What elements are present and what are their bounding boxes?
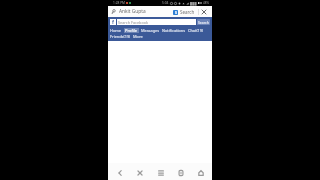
button[interactable]: Search Facebook (118, 19, 196, 25)
staticText: Profile (125, 28, 138, 33)
button[interactable]: Site info (111, 9, 116, 14)
staticText: Search Facebook (118, 20, 149, 25)
button[interactable]: Search (197, 19, 210, 25)
button[interactable]: Facebook (110, 19, 116, 25)
staticText: Home (110, 28, 122, 33)
staticText: Search (198, 20, 209, 25)
staticText: Messages (141, 28, 160, 33)
staticText: Friends(19) (110, 34, 131, 39)
button[interactable]: Notifications (162, 28, 186, 33)
button[interactable]: Messages (141, 28, 160, 33)
staticText: 5:04 (162, 1, 169, 5)
button[interactable]: Close tab (201, 9, 207, 15)
button[interactable]: Close (131, 166, 148, 180)
staticText: Ankit Gupta (119, 8, 146, 15)
button[interactable]: Friends(19) (110, 34, 131, 39)
button[interactable]: Tabs (172, 166, 189, 180)
staticText: f (112, 19, 114, 25)
staticText: ▉▉▉ (190, 2, 197, 5)
button[interactable]: Back (111, 166, 128, 180)
button[interactable]: Home (110, 28, 122, 33)
button[interactable]: Menu (152, 166, 169, 180)
staticText: Chat(19) (188, 28, 204, 33)
staticText: Notifications (162, 28, 186, 33)
button[interactable]: More (133, 34, 143, 39)
button[interactable]: Home (192, 166, 209, 180)
staticText: Search (180, 9, 195, 15)
staticText: 1:28 PM (113, 1, 125, 5)
button[interactable]: S (173, 9, 195, 15)
staticText: S (175, 10, 177, 15)
staticText: More (133, 34, 143, 39)
button[interactable]: Chat(19) (188, 28, 204, 33)
staticText: 48% (203, 1, 209, 5)
button[interactable]: Profile (125, 28, 138, 33)
